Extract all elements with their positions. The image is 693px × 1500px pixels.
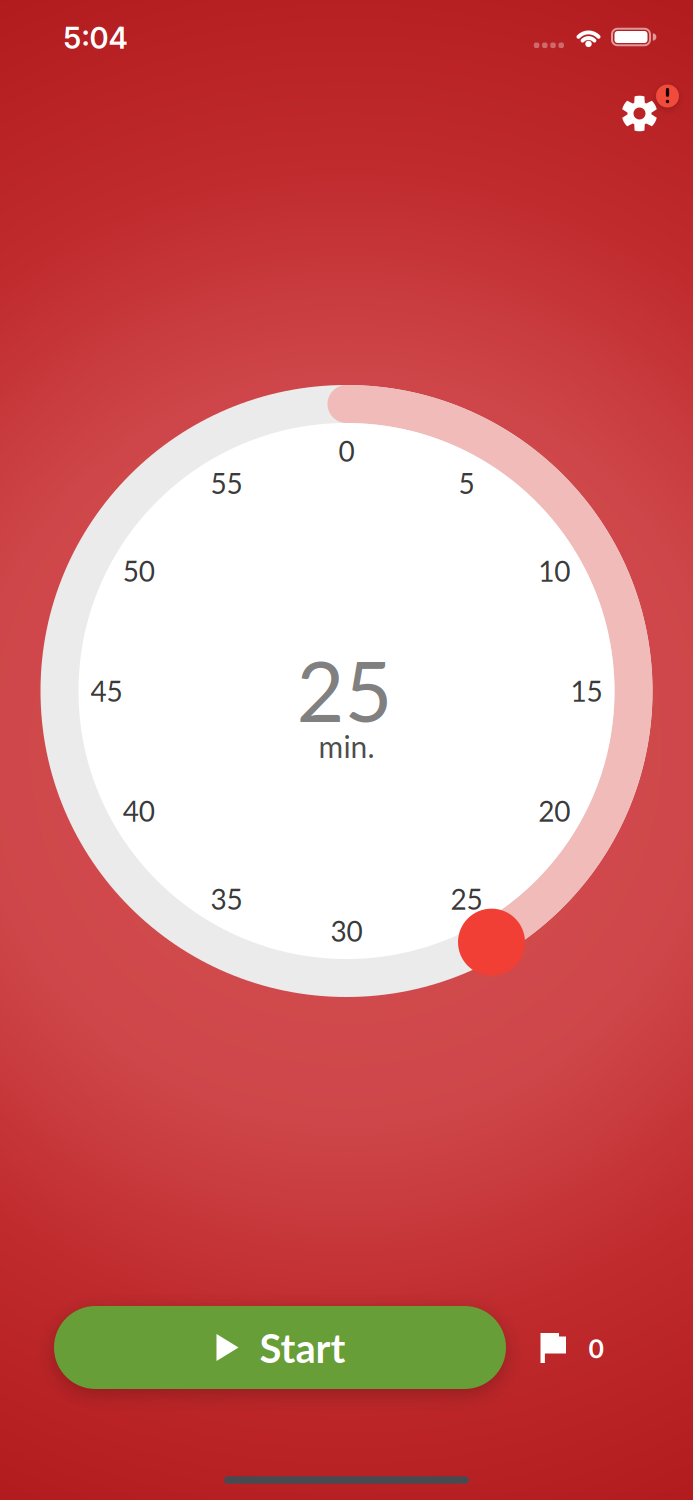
staticText: 15 (570, 674, 602, 708)
staticText: 35 (210, 882, 242, 916)
staticText: Start (259, 1323, 345, 1371)
staticText: 50 (123, 554, 155, 588)
button[interactable] (0, 0, 693, 1500)
staticText: 45 (90, 674, 122, 708)
staticText: 0 (338, 434, 354, 468)
staticText: 0 (588, 1332, 603, 1364)
staticText: 25 (450, 882, 482, 916)
staticText: 5:04 (63, 20, 127, 56)
staticText: 55 (210, 466, 242, 500)
button[interactable]: 0 (540, 1332, 603, 1364)
staticText: 25 (296, 640, 392, 740)
staticText: 20 (538, 794, 570, 828)
staticText: 5 (458, 466, 474, 500)
staticText: 10 (538, 554, 570, 588)
staticText: 30 (330, 914, 362, 948)
button[interactable]: Start (54, 1306, 506, 1389)
staticText: 40 (123, 794, 155, 828)
staticText: min. (318, 728, 374, 764)
